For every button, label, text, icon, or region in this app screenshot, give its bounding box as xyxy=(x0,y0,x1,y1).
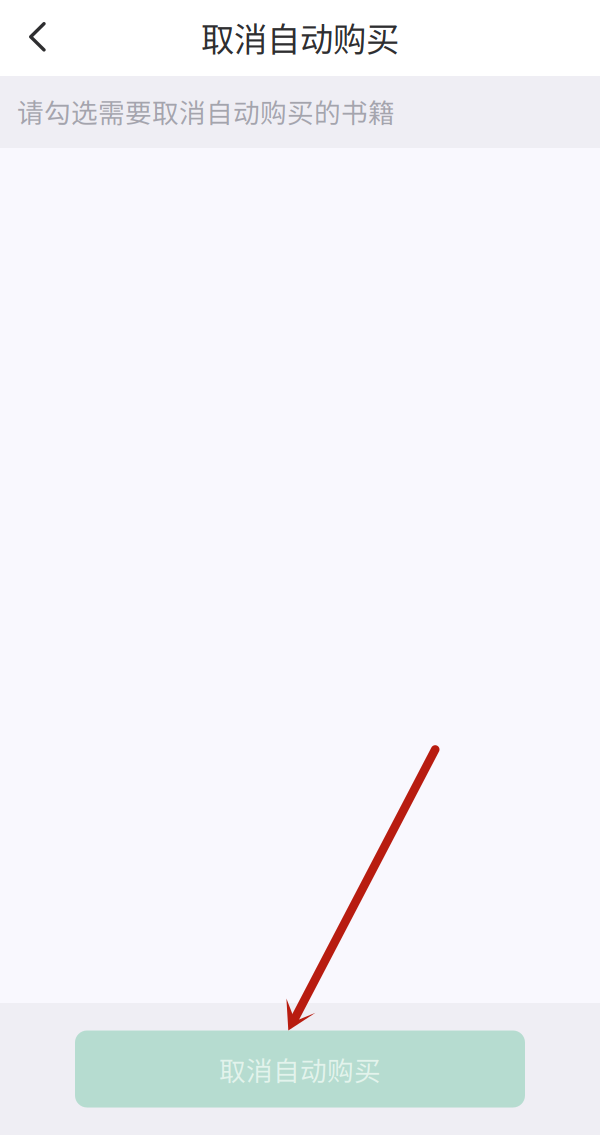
button[interactable]: Back xyxy=(0,0,76,76)
button[interactable]: 取消自动购买 xyxy=(75,1030,525,1107)
staticText: 取消自动购买 xyxy=(201,13,399,61)
staticText: 请勾选需要取消自动购买的书籍 xyxy=(17,92,395,130)
staticText: 取消自动购买 xyxy=(219,1050,381,1088)
